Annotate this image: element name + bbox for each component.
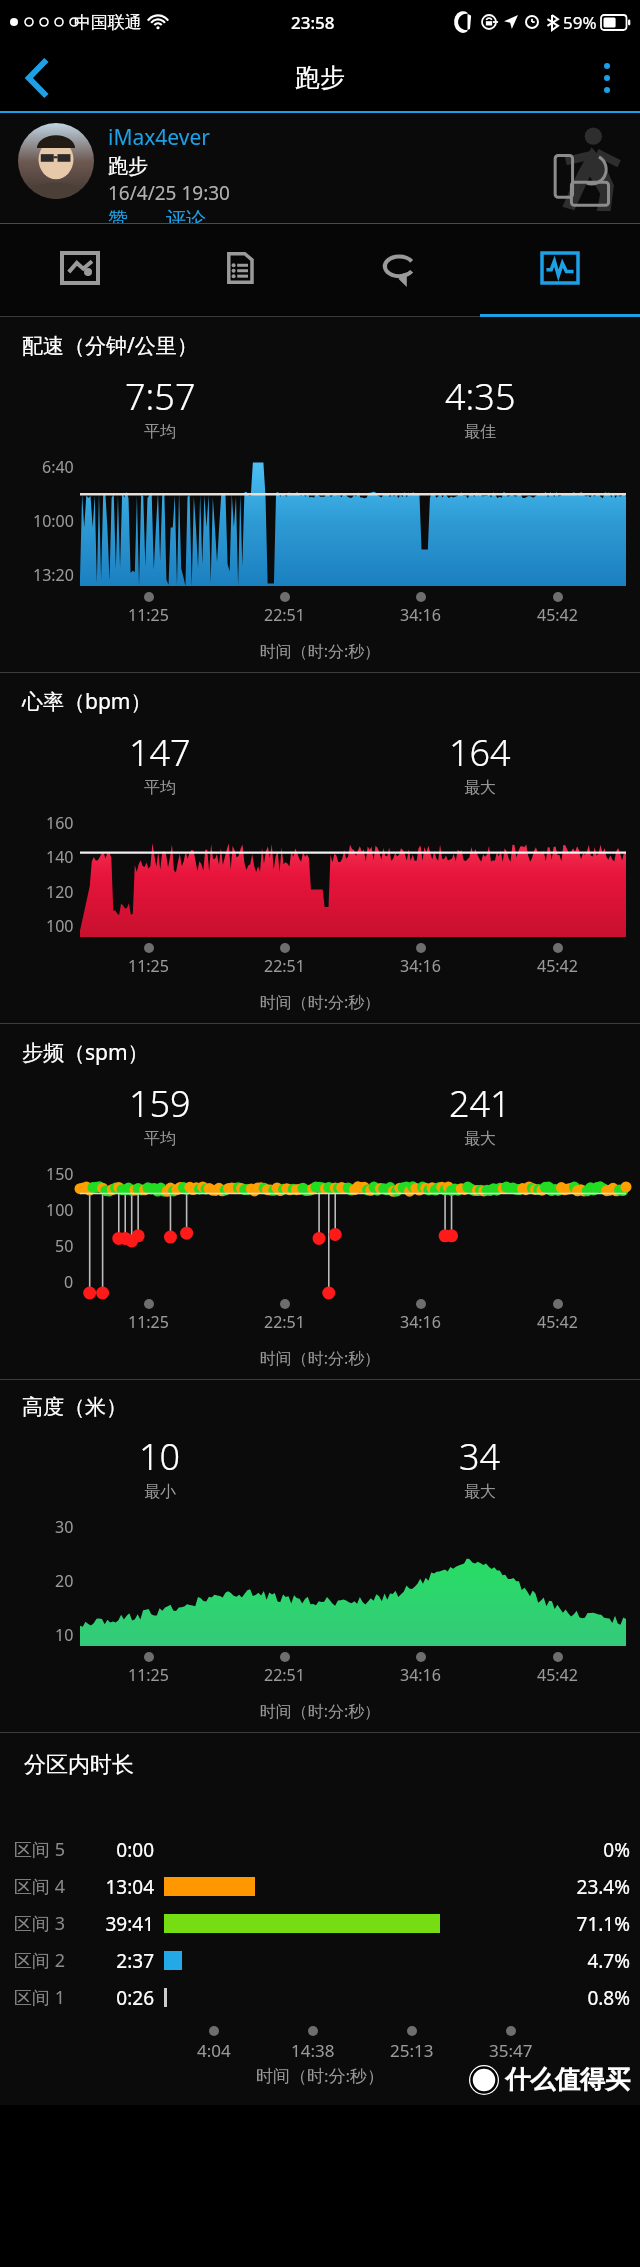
staticText: 10 (139, 1432, 181, 1481)
staticText: 120 (46, 881, 74, 903)
staticText: 平均 (144, 1129, 176, 1149)
staticText: 最大 (464, 1482, 496, 1502)
button[interactable]: 图表 (480, 224, 640, 317)
staticText: 34 (459, 1432, 501, 1481)
staticText: 160 (46, 812, 74, 834)
button[interactable]: 赞 (108, 207, 130, 223)
button[interactable]: 评论 (166, 207, 206, 223)
staticText: 高度（米） (22, 1394, 127, 1420)
staticText: 中国联通 (74, 12, 142, 33)
button[interactable]: 地图 (0, 224, 160, 317)
staticText: 23.4% (562, 1874, 630, 1900)
staticText: 34:16 (400, 1311, 441, 1333)
staticText: 区间 5 (14, 1837, 76, 1862)
button[interactable]: 区间 4 (0, 1868, 640, 1905)
staticText: 34:16 (400, 1664, 441, 1686)
button[interactable]: 区间 5 (0, 1831, 640, 1868)
staticText: 13:04 (76, 1874, 154, 1900)
staticText: 23:58 (291, 11, 335, 34)
staticText: 分区内时长 (24, 1751, 134, 1779)
staticText: 11:25 (128, 1311, 169, 1333)
staticText: 4:04 (197, 2039, 231, 2062)
staticText: 最佳 (464, 422, 496, 442)
staticText: 心率（bpm） (22, 687, 152, 716)
staticText: 0:26 (76, 1985, 154, 2011)
staticText: 0.8% (562, 1985, 630, 2011)
staticText: 评论 (166, 207, 206, 223)
button[interactable]: 圈速 (320, 224, 480, 317)
button[interactable]: 区间 2 (0, 1942, 640, 1979)
staticText: 10 (55, 1624, 74, 1646)
staticText: 16/4/25 19:30 (108, 180, 230, 206)
staticText: 34:16 (400, 955, 441, 977)
staticText: 最小 (144, 1482, 176, 1502)
staticText: 100 (46, 1199, 74, 1221)
staticText: 30 (55, 1516, 74, 1538)
staticText: 25:13 (390, 2039, 434, 2062)
staticText: 区间 3 (14, 1911, 76, 1936)
staticText: 241 (449, 1079, 511, 1128)
staticText: 59% (563, 11, 597, 34)
staticText: 跑步 (295, 62, 345, 93)
staticText: 22:51 (264, 604, 305, 626)
staticText: iMax4ever (108, 123, 210, 152)
staticText: 平均 (144, 778, 176, 798)
staticText: 45:42 (537, 1664, 578, 1686)
staticText: 什么值得买 (505, 2064, 630, 2095)
button[interactable]: 设备 (554, 152, 612, 210)
staticText: 45:42 (537, 604, 578, 626)
staticText: 赞 (108, 207, 128, 223)
staticText: 35:47 (489, 2039, 533, 2062)
staticText: 159 (129, 1079, 191, 1128)
staticText: 平均 (144, 422, 176, 442)
staticText: 11:25 (128, 604, 169, 626)
staticText: 最大 (464, 1129, 496, 1149)
staticText: 14:38 (291, 2039, 335, 2062)
staticText: 147 (129, 728, 191, 777)
staticText: 11:25 (128, 1664, 169, 1686)
staticText: 164 (449, 728, 511, 777)
button[interactable]: 详情 (160, 224, 320, 317)
staticText: 20 (55, 1570, 74, 1592)
staticText: 150 (46, 1163, 74, 1185)
staticText: 时间（时:分:秒） (0, 2064, 640, 2087)
staticText: 0 (64, 1271, 74, 1293)
staticText: 45:42 (537, 1311, 578, 1333)
staticText: 7:57 (125, 372, 196, 421)
staticText: 13:20 (33, 564, 74, 586)
staticText: 步频（spm） (22, 1038, 149, 1067)
staticText: 区间 2 (14, 1948, 76, 1973)
staticText: 22:51 (264, 1311, 305, 1333)
button[interactable]: 区间 3 (0, 1905, 640, 1942)
staticText: 71.1% (562, 1911, 630, 1937)
staticText: 配速（分钟/公里） (22, 331, 198, 360)
button[interactable]: 更多选项 (574, 44, 640, 111)
staticText: 10:00 (33, 510, 74, 532)
staticText: 区间 1 (14, 1985, 76, 2010)
staticText: 时间（时:分:秒） (0, 991, 640, 1013)
staticText: 时间（时:分:秒） (0, 1347, 640, 1369)
staticText: 100 (46, 915, 74, 937)
button[interactable]: 区间 1 (0, 1979, 640, 2016)
staticText: 22:51 (264, 955, 305, 977)
staticText: 4:35 (445, 372, 516, 421)
staticText: 时间（时:分:秒） (0, 640, 640, 662)
staticText: 22:51 (264, 1664, 305, 1686)
staticText: 最大 (464, 778, 496, 798)
staticText: 区间 4 (14, 1874, 76, 1899)
staticText: 45:42 (537, 955, 578, 977)
button[interactable]: 用户头像 (18, 123, 94, 199)
staticText: 39:41 (76, 1911, 154, 1937)
staticText: 34:16 (400, 604, 441, 626)
staticText: 6:40 (42, 456, 74, 478)
staticText: 50 (55, 1235, 74, 1257)
staticText: 时间（时:分:秒） (0, 1700, 640, 1722)
staticText: 0:00 (76, 1837, 154, 1863)
staticText: 4.7% (562, 1948, 630, 1974)
staticText: 跑步 (108, 154, 148, 179)
staticText: 2:37 (76, 1948, 154, 1974)
staticText: 11:25 (128, 955, 169, 977)
staticText: 140 (46, 846, 74, 868)
button[interactable]: 返回 (0, 44, 76, 111)
staticText: 0% (562, 1837, 630, 1863)
